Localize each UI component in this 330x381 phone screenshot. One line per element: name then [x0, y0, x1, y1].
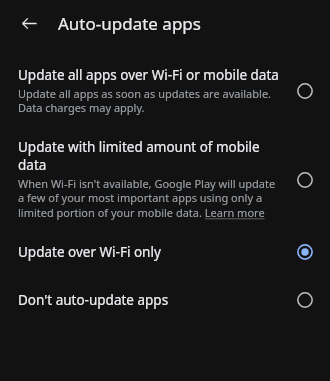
staticText: Update with limited amount of mobile dat… — [18, 138, 284, 174]
button[interactable]: Update with limited amount of mobile dat… — [0, 138, 330, 221]
button[interactable]: Update over Wi-Fi only — [0, 243, 330, 261]
button[interactable]: Back — [16, 10, 42, 36]
staticText: Update all apps over Wi-Fi or mobile dat… — [18, 66, 279, 84]
staticText: Update over Wi-Fi only — [18, 243, 161, 261]
button[interactable]: Don't auto-update apps — [0, 291, 330, 309]
staticText: Auto-update apps — [58, 12, 201, 35]
staticText: Don't auto-update apps — [18, 291, 169, 309]
staticText: When Wi-Fi isn't available, Google Play … — [18, 176, 284, 221]
staticText: Update all apps as soon as updates are a… — [18, 86, 284, 116]
button[interactable]: Update all apps over Wi-Fi or mobile dat… — [0, 66, 330, 116]
